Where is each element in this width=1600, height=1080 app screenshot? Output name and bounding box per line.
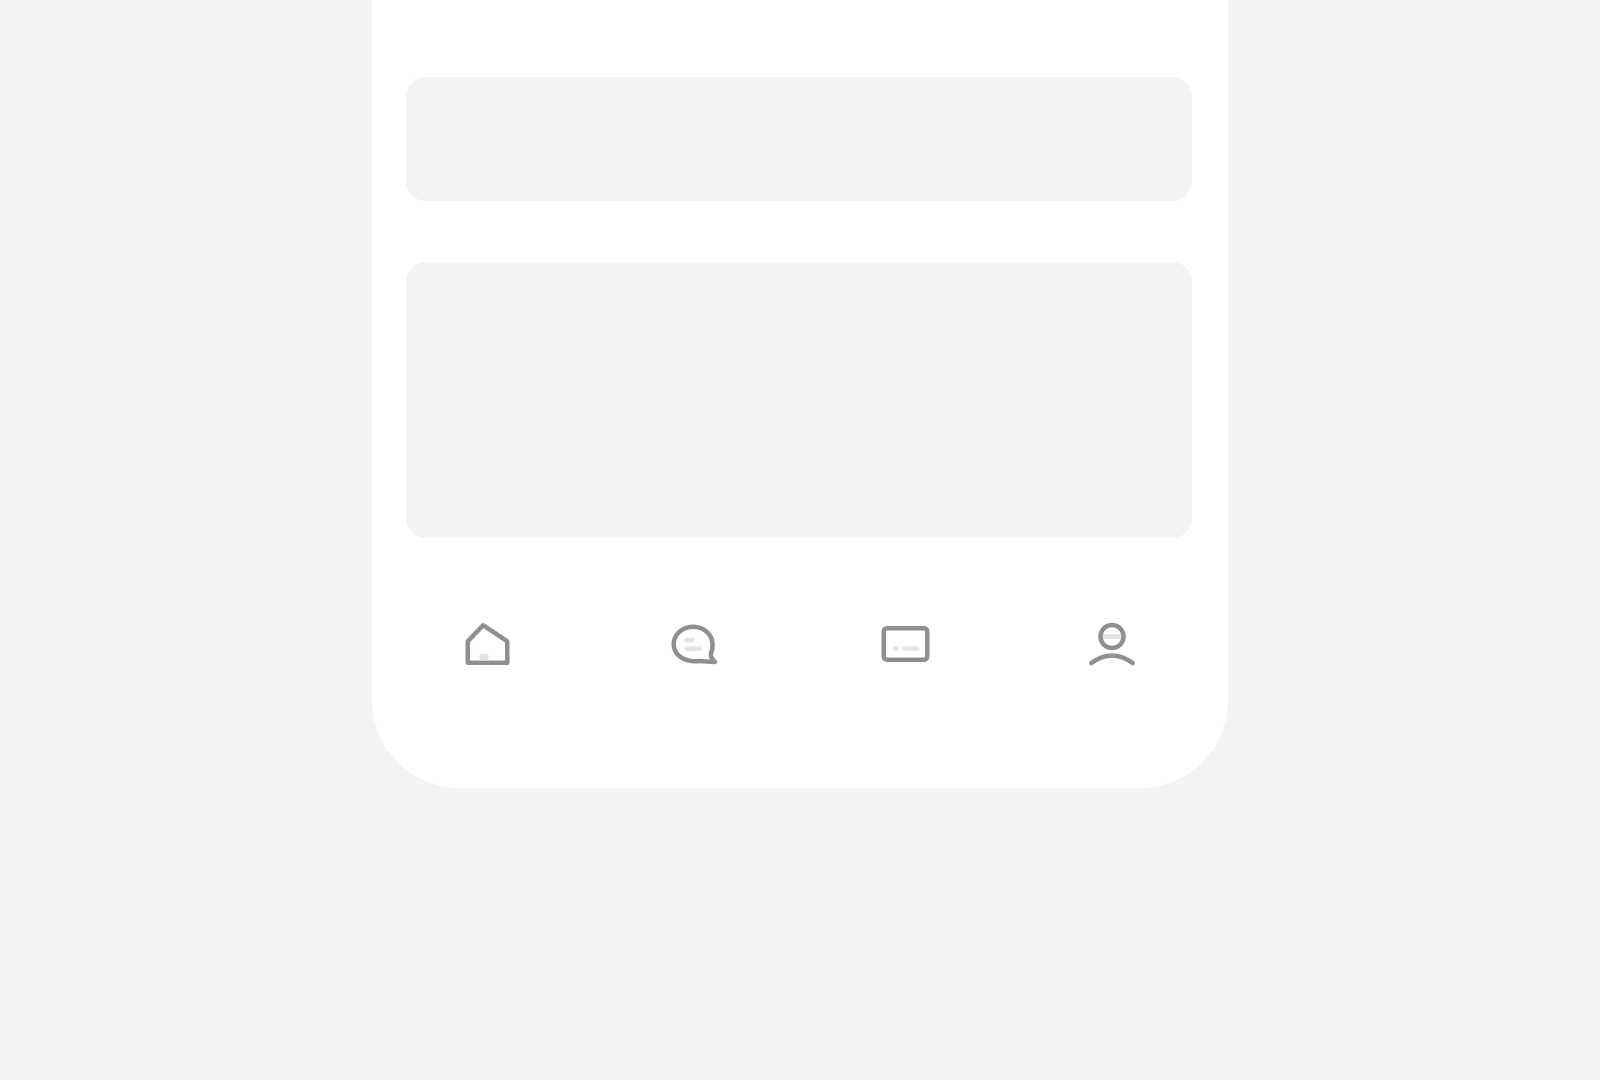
button[interactable]: Wallet [799, 596, 1007, 692]
button[interactable]: Profile [1007, 596, 1215, 692]
button[interactable]: Messages [591, 596, 799, 692]
button[interactable]: Home [383, 596, 591, 692]
